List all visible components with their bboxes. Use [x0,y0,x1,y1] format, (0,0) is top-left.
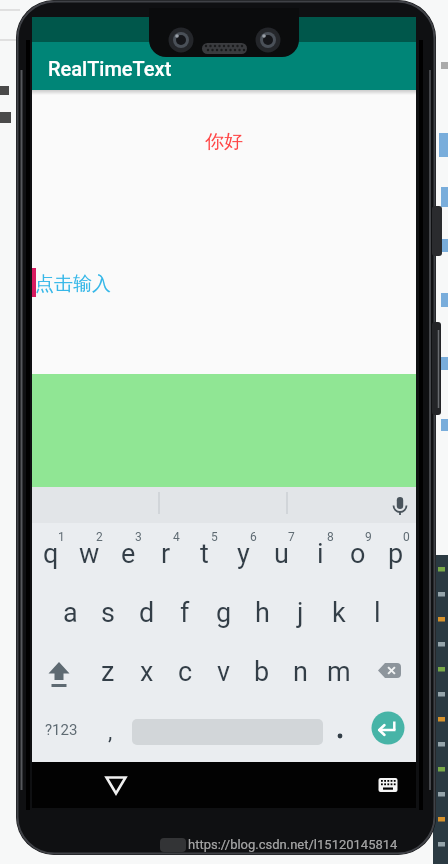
staticText: 点击输入 [35,272,111,296]
staticText: m [327,656,351,688]
staticText: e [121,538,136,570]
button[interactable]: a [51,595,89,631]
staticText: j [297,597,304,629]
button[interactable]: q [32,536,70,572]
button[interactable] [384,488,416,520]
staticText: 你好 [205,130,243,154]
button[interactable]: k [320,595,358,631]
button[interactable]: ?123 [37,713,85,747]
button[interactable]: m [320,654,358,690]
button[interactable]: x [128,654,166,690]
button[interactable]: j [281,595,319,631]
staticText: o [350,538,366,570]
button[interactable] [96,762,138,808]
staticText: 6 [250,530,257,544]
staticText: 8 [327,530,334,544]
button[interactable] [32,487,416,523]
staticText: p [388,538,404,570]
button[interactable]: c [166,654,204,690]
staticText: f [180,597,190,629]
staticText: z [101,656,115,688]
button[interactable]: b [243,654,281,690]
staticText: h [255,597,270,629]
staticText: i [317,538,324,570]
button[interactable]: v [205,654,243,690]
button[interactable]: u [262,536,300,572]
staticText: u [274,538,289,570]
button[interactable]: y [224,536,262,572]
staticText: ?123 [45,721,78,739]
button[interactable] [366,762,410,808]
button[interactable]: h [243,595,281,631]
staticText: 0 [403,530,410,544]
button[interactable] [128,715,326,747]
button[interactable]: d [128,595,166,631]
button[interactable]: w [70,536,108,572]
staticText: v [217,656,231,688]
button[interactable]: z [89,654,127,690]
button[interactable]: o [339,536,377,572]
staticText: 7 [288,530,295,544]
staticText: k [332,597,346,629]
button[interactable]: 点击输入 [35,271,175,297]
button[interactable]: r [147,536,185,572]
staticText: 3 [135,530,142,544]
staticText: x [140,656,154,688]
staticText: 2 [96,530,103,544]
staticText: RealTimeText [48,57,172,80]
staticText: https://blog.csdn.net/l15120145814 [188,837,398,852]
button[interactable] [371,711,405,745]
staticText: g [216,597,232,629]
button[interactable]: g [205,595,243,631]
staticText: 1 [58,530,65,544]
staticText: l [374,597,381,629]
staticText: a [63,597,78,629]
button[interactable]: e [109,536,147,572]
button[interactable]: t [185,536,223,572]
staticText: w [79,538,100,570]
staticText: c [178,656,193,688]
staticText: r [161,538,171,570]
button[interactable] [32,654,88,690]
button[interactable] [326,715,356,747]
staticText: t [200,538,209,570]
staticText: s [101,597,115,629]
staticText: 4 [173,530,180,544]
staticText: 9 [365,530,372,544]
staticText: n [293,656,308,688]
button[interactable]: f [166,595,204,631]
button[interactable]: s [89,595,127,631]
button[interactable]: p [377,536,415,572]
staticText: q [43,538,59,570]
staticText: y [237,538,250,570]
staticText: 5 [211,530,218,544]
staticText: , [108,719,113,745]
button[interactable]: n [281,654,319,690]
staticText: d [139,597,155,629]
button[interactable]: i [301,536,339,572]
staticText: b [254,656,270,688]
button[interactable] [360,654,416,690]
button[interactable]: l [358,595,396,631]
